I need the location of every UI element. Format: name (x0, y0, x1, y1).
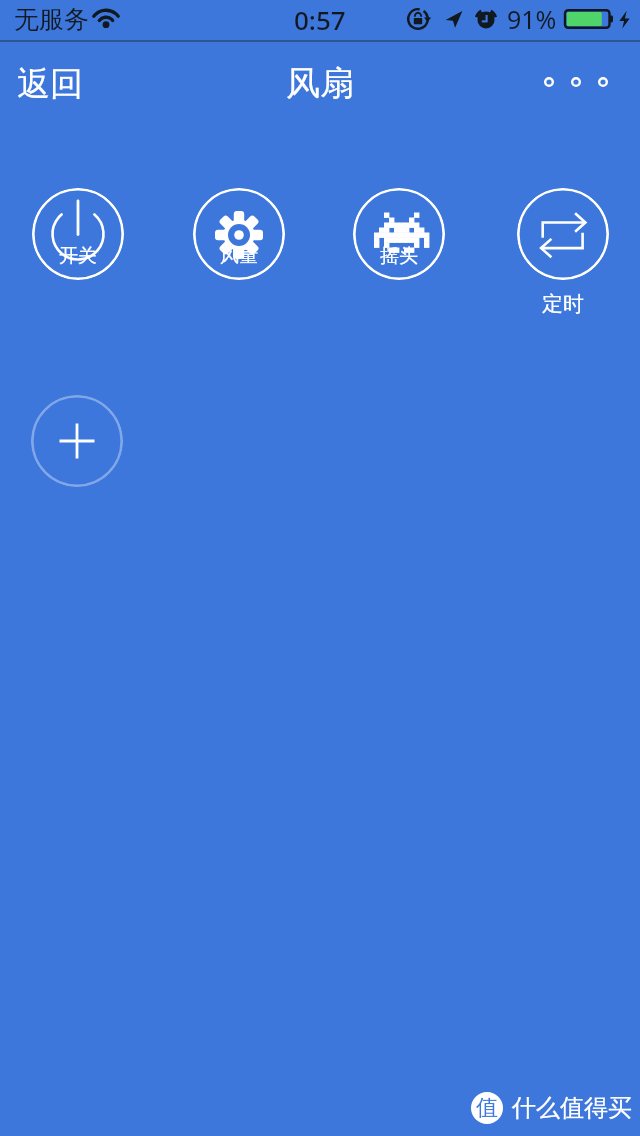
button[interactable]: Add device (31, 395, 123, 487)
staticText: 开关 (59, 244, 97, 268)
staticText: 无服务 (14, 4, 89, 35)
button[interactable]: Timer (517, 188, 609, 317)
button[interactable]: 返回 (0, 55, 105, 113)
button[interactable]: Power (32, 188, 124, 280)
button[interactable]: More options (534, 67, 629, 97)
button[interactable]: Fan speed (193, 188, 285, 280)
staticText: 什么值得买 (512, 1093, 632, 1123)
staticText: 风扇 (286, 62, 354, 105)
staticText: 定时 (542, 291, 584, 317)
staticText: 返回 (17, 63, 83, 105)
staticText: 0:57 (294, 2, 346, 37)
button[interactable]: Oscillate (353, 188, 445, 280)
staticText: 风量 (220, 244, 258, 268)
staticText: 91% (507, 2, 557, 36)
staticText: 值 (476, 1094, 498, 1122)
staticText: 摇头 (380, 244, 418, 268)
